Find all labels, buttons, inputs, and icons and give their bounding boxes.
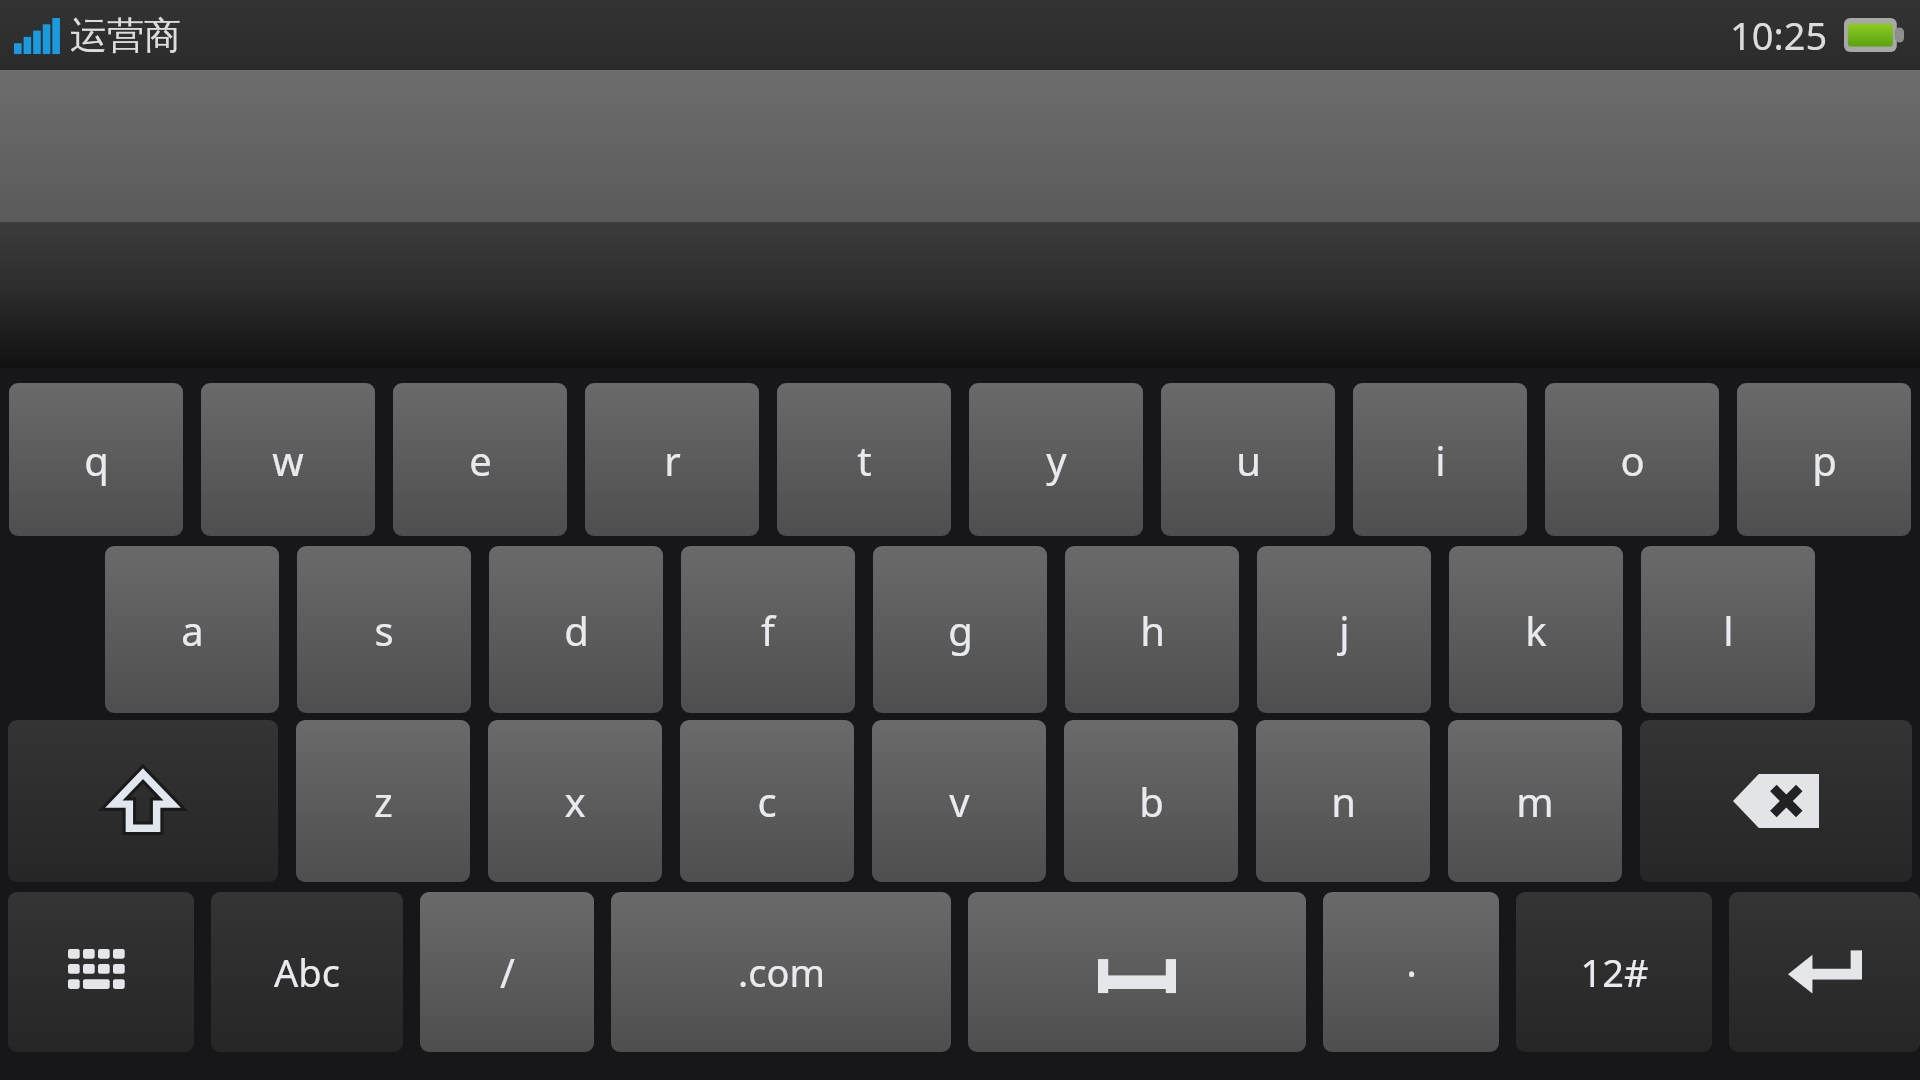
staticText: x: [564, 774, 586, 828]
button[interactable]: y: [969, 383, 1143, 536]
staticText: d: [564, 603, 589, 657]
button[interactable]: b: [1064, 720, 1238, 882]
staticText: l: [1723, 603, 1734, 657]
button[interactable]: u: [1161, 383, 1335, 536]
button[interactable]: i: [1353, 383, 1527, 536]
button[interactable]: x: [488, 720, 662, 882]
button[interactable]: ·: [1323, 892, 1499, 1052]
button[interactable]: Backspace: [1640, 720, 1912, 882]
staticText: i: [1435, 433, 1446, 487]
staticText: /: [500, 945, 515, 999]
staticText: 运营商: [70, 12, 181, 59]
staticText: y: [1046, 433, 1067, 487]
staticText: 12#: [1580, 946, 1649, 998]
staticText: f: [761, 603, 775, 657]
staticText: u: [1236, 433, 1261, 487]
staticText: c: [757, 774, 777, 828]
button[interactable]: r: [585, 383, 759, 536]
button[interactable]: d: [489, 546, 663, 713]
button[interactable]: z: [296, 720, 470, 882]
button[interactable]: a: [105, 546, 279, 713]
button[interactable]: p: [1737, 383, 1911, 536]
button[interactable]: Space: [968, 892, 1306, 1052]
button[interactable]: Abc: [211, 892, 403, 1052]
button[interactable]: Switch keyboard: [8, 892, 194, 1052]
staticText: .com: [738, 946, 825, 998]
button[interactable]: e: [393, 383, 567, 536]
staticText: o: [1620, 433, 1645, 487]
staticText: 10:25: [1730, 9, 1828, 61]
staticText: q: [84, 433, 109, 487]
staticText: a: [181, 603, 204, 657]
button[interactable]: n: [1256, 720, 1430, 882]
button[interactable]: Shift: [8, 720, 278, 882]
button[interactable]: h: [1065, 546, 1239, 713]
staticText: j: [1339, 603, 1350, 657]
button[interactable]: v: [872, 720, 1046, 882]
staticText: k: [1525, 603, 1547, 657]
staticText: t: [857, 433, 872, 487]
staticText: m: [1516, 774, 1554, 828]
button[interactable]: 12#: [1516, 892, 1712, 1052]
button[interactable]: c: [680, 720, 854, 882]
staticText: Abc: [274, 946, 340, 998]
button[interactable]: .com: [611, 892, 951, 1052]
button[interactable]: t: [777, 383, 951, 536]
button[interactable]: m: [1448, 720, 1622, 882]
staticText: g: [948, 603, 973, 657]
button[interactable]: g: [873, 546, 1047, 713]
staticText: s: [374, 603, 394, 657]
button[interactable]: o: [1545, 383, 1719, 536]
staticText: n: [1331, 774, 1356, 828]
button[interactable]: j: [1257, 546, 1431, 713]
staticText: h: [1140, 603, 1165, 657]
button[interactable]: q: [9, 383, 183, 536]
button[interactable]: k: [1449, 546, 1623, 713]
button[interactable]: l: [1641, 546, 1815, 713]
staticText: e: [469, 433, 492, 487]
button[interactable]: w: [201, 383, 375, 536]
button[interactable]: Enter: [1729, 892, 1920, 1052]
button[interactable]: f: [681, 546, 855, 713]
staticText: ·: [1406, 945, 1417, 999]
button[interactable]: /: [420, 892, 594, 1052]
staticText: b: [1139, 774, 1164, 828]
button[interactable]: s: [297, 546, 471, 713]
staticText: w: [272, 433, 304, 487]
staticText: r: [664, 433, 681, 487]
staticText: v: [949, 774, 970, 828]
staticText: p: [1812, 433, 1837, 487]
staticText: z: [374, 774, 393, 828]
